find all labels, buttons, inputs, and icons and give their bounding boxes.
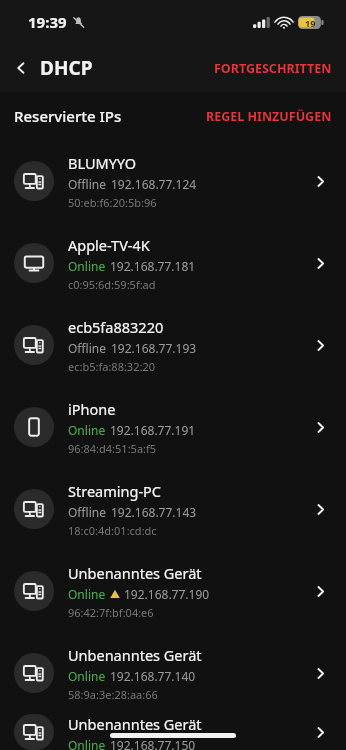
staticText: ecb5fa883220 [68,317,164,337]
other: Details [308,415,332,439]
staticText: Offline [68,340,107,356]
staticText: 192.168.77.143 [111,504,197,520]
other: Details [308,333,332,357]
staticText: 192.168.77.140 [110,668,196,684]
staticText: 96:42:7f:bf:04:e6 [68,605,154,620]
button[interactable]: REGEL HINZUFÜGEN [192,100,346,133]
staticText: 192.168.77.193 [111,340,197,356]
staticText: 192.168.77.191 [110,422,196,438]
staticText: Apple-TV-4K [68,235,150,255]
staticText: 19:39 [28,12,67,32]
staticText: iPhone [68,399,116,419]
staticText: 192.168.77.124 [111,176,197,192]
staticText: ec:b5:fa:88:32:20 [68,359,155,374]
button[interactable]: ecb5fa883220 [0,304,346,386]
staticText: Online [68,258,106,274]
other: Details [308,497,332,521]
button[interactable]: Unbenanntes Gerät [0,632,346,714]
staticText: 192.168.77.181 [110,258,196,274]
staticText: Offline [68,176,107,192]
other: Details [308,169,332,193]
other: Details [308,661,332,685]
staticText: 50:eb:f6:20:5b:96 [68,195,157,210]
staticText: 19 [305,17,316,29]
staticText: DHCP [40,55,93,81]
button[interactable]: iPhone [0,386,346,468]
staticText: Unbenanntes Gerät [68,645,202,665]
staticText: 96:84:d4:51:5a:f5 [68,441,157,456]
staticText: Online [68,737,106,750]
button[interactable]: Unbenanntes Gerät [0,714,346,750]
staticText: 58:9a:3e:28:aa:66 [68,687,158,702]
other: Details [308,720,332,744]
staticText: Online [68,422,106,438]
staticText: Reservierte IPs [14,106,122,126]
staticText: REGEL HINZUFÜGEN [206,108,332,125]
button[interactable]: FORTGESCHRITTEN [200,52,346,85]
staticText: 192.168.77.190 [124,586,210,602]
staticText: Unbenanntes Gerät [68,563,202,583]
staticText: BLUMYYO [68,153,137,173]
staticText: 18:c0:4d:01:cd:dc [68,523,157,538]
staticText: Unbenanntes Gerät [68,714,202,734]
button[interactable]: Unbenanntes Gerät [0,550,346,632]
other: Details [308,251,332,275]
staticText: 192.168.77.150 [110,737,196,750]
staticText: Online [68,586,106,602]
button[interactable]: Back [0,49,101,87]
button[interactable]: BLUMYYO [0,140,346,222]
staticText: Online [68,668,106,684]
staticText: c0:95:6d:59:5f:ad [68,277,156,292]
button[interactable]: Streaming-PC [0,468,346,550]
staticText: FORTGESCHRITTEN [214,60,332,77]
other: Details [308,579,332,603]
staticText: Streaming-PC [68,481,161,501]
staticText: Offline [68,504,107,520]
button[interactable]: Apple-TV-4K [0,222,346,304]
